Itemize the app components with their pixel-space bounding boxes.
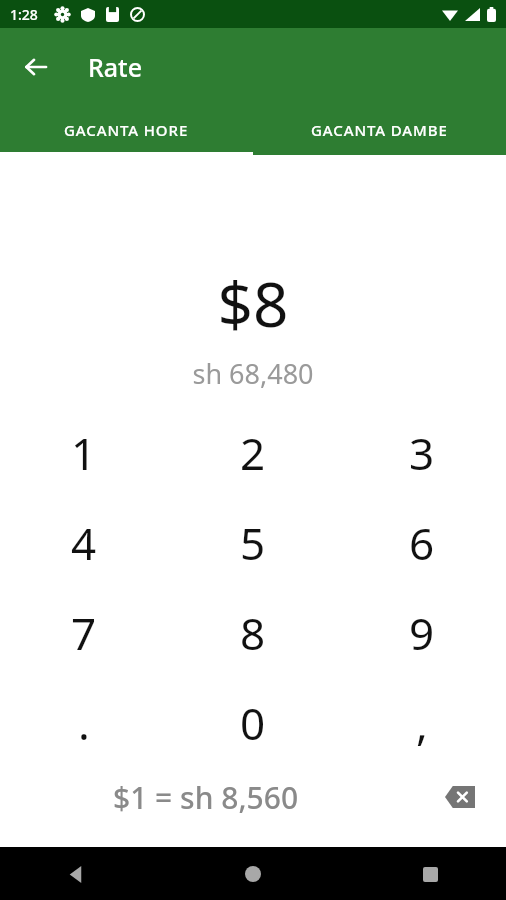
staticText: . — [78, 693, 90, 753]
button[interactable]: Recents — [410, 854, 450, 894]
button[interactable]: 5 — [168, 498, 337, 588]
button[interactable]: . — [0, 678, 168, 768]
button[interactable]: GACANTA DAMBE — [253, 105, 506, 155]
staticText: $8 — [0, 261, 506, 345]
button[interactable]: , — [337, 678, 506, 768]
staticText: 4 — [71, 513, 97, 573]
button[interactable]: 4 — [0, 498, 168, 588]
button[interactable]: 3 — [337, 408, 506, 498]
staticText: $1 = sh 8,560 — [113, 777, 299, 818]
staticText: 2 — [240, 423, 266, 483]
button[interactable]: 7 — [0, 588, 168, 678]
staticText: 7 — [71, 603, 97, 663]
staticText: 0 — [240, 693, 266, 753]
button[interactable]: 6 — [337, 498, 506, 588]
staticText: GACANTA DAMBE — [311, 120, 448, 140]
button[interactable]: 2 — [168, 408, 337, 498]
staticText: 3 — [409, 423, 435, 483]
button[interactable]: 1 — [0, 408, 168, 498]
button[interactable]: Backspace — [436, 773, 484, 821]
staticText: 1 — [71, 423, 97, 483]
staticText: , — [416, 693, 428, 753]
button[interactable]: Back — [12, 43, 60, 91]
staticText: 6 — [409, 513, 435, 573]
button[interactable]: Back — [56, 854, 96, 894]
staticText: GACANTA HORE — [64, 120, 189, 140]
staticText: 1:28 — [10, 5, 38, 24]
staticText: 9 — [409, 603, 435, 663]
button[interactable]: GACANTA HORE — [0, 105, 253, 155]
staticText: 8 — [240, 603, 266, 663]
button[interactable]: 9 — [337, 588, 506, 678]
button[interactable]: 8 — [168, 588, 337, 678]
staticText: Rate — [88, 50, 143, 84]
staticText: sh 68,480 — [0, 355, 506, 392]
button[interactable]: 0 — [168, 678, 337, 768]
staticText: 5 — [240, 513, 266, 573]
button[interactable]: Home — [233, 854, 273, 894]
